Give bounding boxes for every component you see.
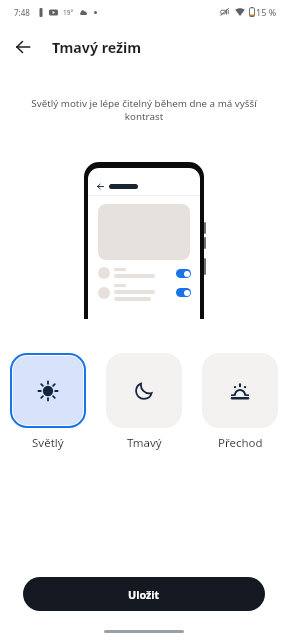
staticText: Světlý motiv je lépe čitelný během dne a… (29, 97, 259, 123)
button[interactable] (106, 353, 182, 428)
button[interactable]: Uložit (23, 577, 265, 611)
button[interactable] (202, 353, 278, 428)
button[interactable] (13, 356, 83, 425)
button[interactable]: Back (10, 34, 36, 60)
staticText: 15 % (256, 6, 277, 18)
staticText: Tmavý režim (52, 38, 142, 57)
staticText: Uložit (128, 587, 160, 602)
staticText: 19° (63, 8, 74, 17)
staticText: Světlý (32, 435, 64, 451)
staticText: 7:48 (14, 7, 30, 18)
staticText: Tmavý (127, 435, 162, 451)
staticText: Přechod (218, 435, 263, 451)
